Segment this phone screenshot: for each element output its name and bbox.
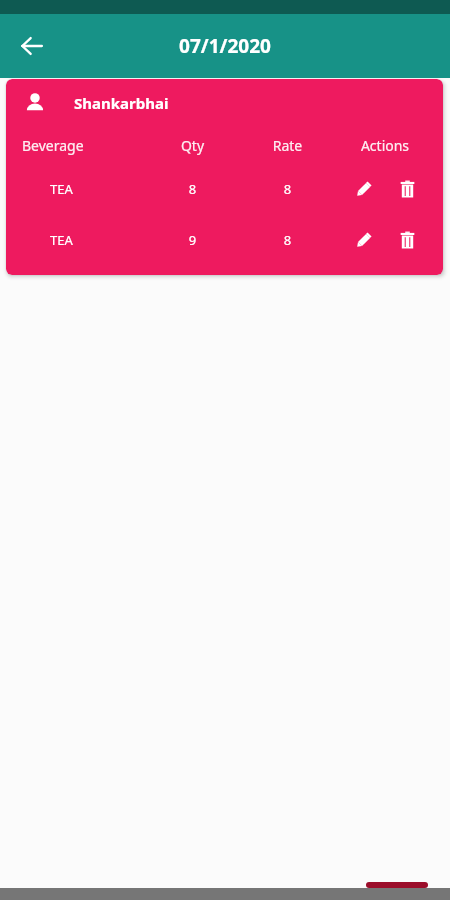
button[interactable]: Edit xyxy=(347,224,379,256)
button[interactable]: Delete xyxy=(391,173,423,205)
staticText: Rate xyxy=(240,136,335,155)
button[interactable]: Add xyxy=(366,882,428,888)
staticText: 07/1/2020 xyxy=(179,33,271,59)
staticText: Beverage xyxy=(22,136,145,155)
button[interactable]: Shankarbhai xyxy=(6,79,443,127)
button[interactable]: TEA xyxy=(6,214,443,265)
staticText: 8 xyxy=(240,180,335,198)
staticText: TEA xyxy=(50,231,73,249)
staticText: 8 xyxy=(240,231,335,249)
staticText: 9 xyxy=(145,231,240,249)
button[interactable]: TEA xyxy=(6,163,443,214)
staticText: Qty xyxy=(145,136,240,155)
staticText: Actions xyxy=(335,136,435,155)
staticText: TEA xyxy=(50,180,73,198)
staticText: Shankarbhai xyxy=(74,93,169,113)
button[interactable]: Delete xyxy=(391,224,423,256)
staticText: 8 xyxy=(145,180,240,198)
button[interactable]: Back xyxy=(12,26,52,66)
button[interactable]: Edit xyxy=(347,173,379,205)
